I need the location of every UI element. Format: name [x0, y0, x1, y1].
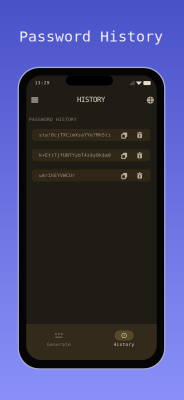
button[interactable]: Generate — [46, 330, 72, 347]
staticText: uAr1hEYVWCUr — [39, 173, 75, 178]
staticText: sta!0cjTXCimXsaYYe?Mh5ti — [39, 132, 111, 138]
staticText: 13:29 — [35, 80, 50, 85]
staticText: History — [114, 342, 135, 347]
button[interactable]: History — [114, 330, 135, 347]
staticText: Password History — [19, 28, 163, 45]
button[interactable]: Menu — [27, 93, 42, 107]
button[interactable]: Language — [143, 93, 158, 108]
button[interactable]: uAr1hEYVWCUr — [32, 169, 150, 181]
staticText: HISTORY — [77, 95, 105, 104]
button[interactable]: k+Et)7jfUNTYybT4z$y0k$a0 — [32, 149, 150, 161]
button[interactable]: sta!0cjTXCimXsaYYe?Mh5ti — [32, 129, 150, 141]
staticText: k+Et)7jfUNTYybT4z$y0k$a0 — [39, 153, 111, 158]
staticText: PASSWORD HISTORY — [29, 117, 77, 122]
staticText: Generate — [47, 342, 71, 347]
